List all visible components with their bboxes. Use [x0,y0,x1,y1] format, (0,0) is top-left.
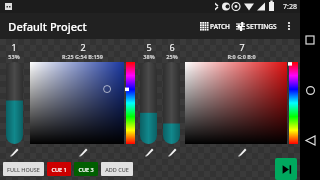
staticText: R:0 G:0 B:0 [227,53,256,60]
button[interactable]: Color field 2 [30,62,124,144]
staticText: Default Project [8,19,87,34]
button[interactable]: FULL HOUSE [3,162,44,176]
staticText: 5 [146,41,152,53]
button[interactable]: 5 [137,39,160,158]
button[interactable]: CUE 1 [47,162,71,176]
staticText: R:25 G:54 B:159 [62,53,103,60]
button[interactable]: PATCH [197,18,233,35]
button[interactable]: Home [300,80,320,100]
button[interactable]: Edit channel 7 [183,145,300,158]
staticText: CUE 3 [78,166,94,173]
button[interactable]: Edit channel 2 [28,145,137,158]
staticText: PATCH [210,22,230,31]
staticText: CUE 1 [51,166,67,173]
button[interactable]: Edit channel 5 [137,145,160,158]
button[interactable]: Next cue [275,158,297,180]
button[interactable]: CUE 3 [74,162,98,176]
staticText: 6 [169,41,175,53]
staticText: 53% [8,53,20,60]
button[interactable]: Color field 7 [185,62,287,144]
button[interactable]: Hue slider 7 [289,62,298,144]
button[interactable]: SETTINGS [233,18,280,35]
staticText: 25% [166,53,178,60]
button[interactable]: Back [300,130,320,150]
button[interactable]: Edit channel 1 [0,145,28,158]
staticText: 38% [143,53,155,60]
button[interactable]: Recents [300,30,320,50]
button[interactable]: Hue slider 2 [126,62,135,144]
button[interactable]: Edit channel 6 [160,145,183,158]
staticText: ADD CUE [105,166,129,173]
staticText: SETTINGS [246,22,277,31]
staticText: 2 [80,41,86,53]
button[interactable]: ADD CUE [101,162,133,176]
button[interactable]: 6 [160,39,183,158]
staticText: 1 [11,41,17,53]
button[interactable]: 1 [0,39,28,158]
button[interactable]: More options [280,17,298,35]
staticText: 7:28 [283,2,297,12]
staticText: FULL HOUSE [7,166,40,173]
staticText: 7 [239,41,245,53]
